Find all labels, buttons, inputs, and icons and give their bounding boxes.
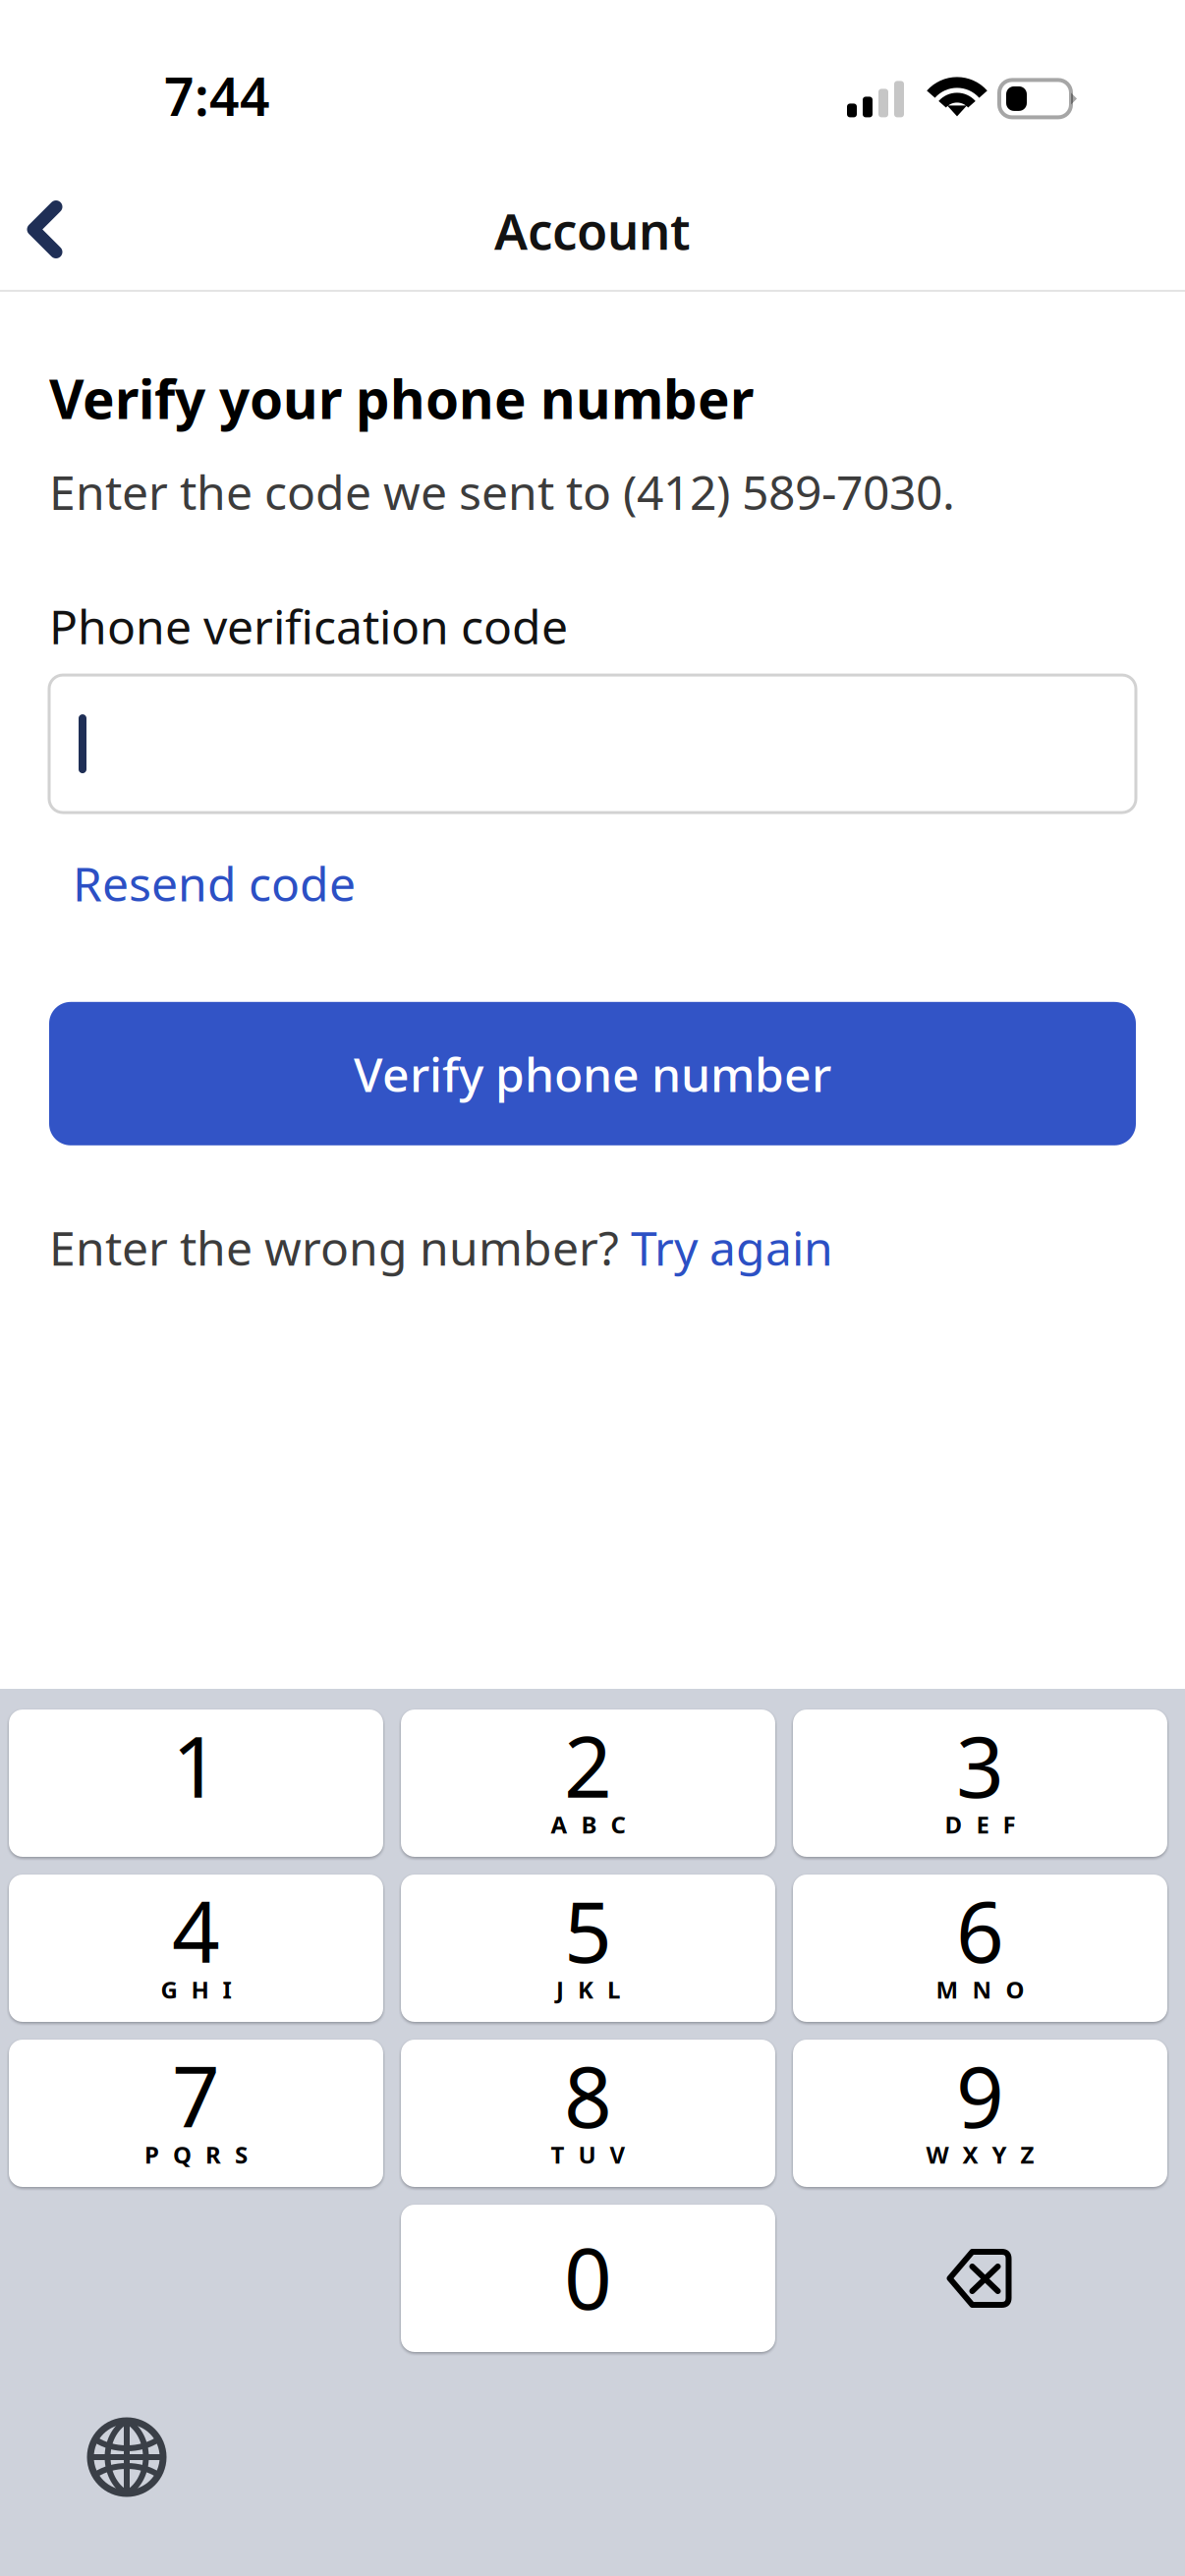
button[interactable]: Delete (793, 2205, 1167, 2352)
staticText: A B C (551, 1809, 625, 1840)
button[interactable]: Resend code (49, 813, 356, 934)
button[interactable]: Phone verification code (49, 675, 1136, 813)
staticText: Try again (631, 1216, 833, 1279)
staticText: 7:44 (164, 61, 270, 130)
staticText: 6 (956, 1875, 1004, 1986)
staticText: 3 (956, 1709, 1004, 1821)
staticText: 9 (956, 2040, 1004, 2151)
staticText: Phone verification code (49, 595, 568, 657)
staticText: Resend code (73, 852, 356, 914)
button[interactable]: Try again (631, 1216, 833, 1279)
staticText: G H I (161, 1974, 231, 2005)
staticText: 7 (172, 2040, 220, 2151)
staticText: T U V (551, 2139, 625, 2170)
staticText: 0 (564, 2221, 612, 2333)
button[interactable]: 9 (793, 2040, 1167, 2187)
staticText: 4 (172, 1875, 220, 1986)
button[interactable]: Next keyboard (66, 2396, 188, 2518)
button[interactable]: 7 (9, 2040, 383, 2187)
button[interactable]: Verify phone number (49, 1002, 1136, 1145)
staticText: Verify your phone number (49, 363, 754, 434)
staticText: M N O (936, 1974, 1024, 2005)
staticText: Verify phone number (354, 1042, 831, 1105)
staticText: 8 (564, 2040, 612, 2151)
staticText: W X Y Z (926, 2139, 1034, 2170)
staticText: J K L (556, 1974, 620, 2005)
staticText: Account (494, 197, 691, 263)
button[interactable]: 0 (401, 2205, 775, 2352)
button[interactable]: 3 (793, 1709, 1167, 1857)
staticText: 2 (564, 1709, 612, 1821)
staticText: Enter the wrong number? (49, 1216, 631, 1279)
staticText: 1 (172, 1709, 220, 1821)
button[interactable]: 2 (401, 1709, 775, 1857)
button[interactable]: 4 (9, 1875, 383, 2022)
staticText: 5 (564, 1875, 612, 1986)
staticText: Enter the code we sent to (412) 589-7030… (49, 460, 955, 523)
button[interactable]: 8 (401, 2040, 775, 2187)
button[interactable]: 6 (793, 1875, 1167, 2022)
button[interactable]: 1 (9, 1709, 383, 1857)
staticText: D E F (945, 1809, 1016, 1840)
button[interactable]: Back (0, 168, 89, 286)
button[interactable]: 5 (401, 1875, 775, 2022)
staticText: P Q R S (144, 2139, 248, 2170)
